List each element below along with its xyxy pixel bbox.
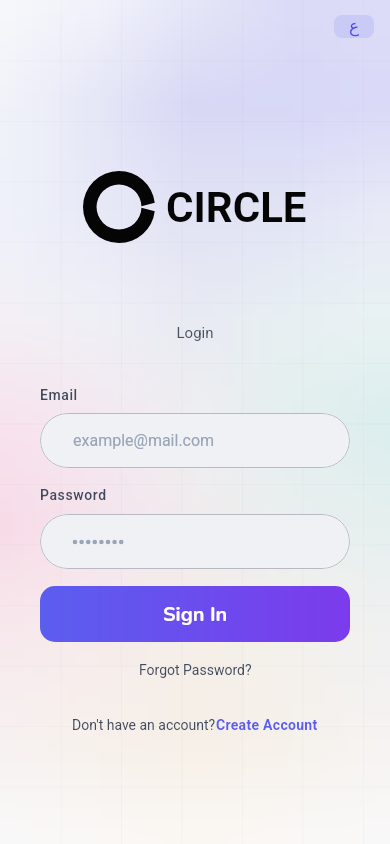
button[interactable]: Switch language to Arabic: [334, 15, 374, 38]
staticText: Sign In: [163, 601, 228, 628]
staticText: Create Account: [216, 717, 318, 733]
staticText: example@mail.com: [73, 431, 215, 450]
button[interactable]: Sign In: [40, 586, 350, 642]
staticText: ع: [349, 16, 360, 36]
staticText: Login: [0, 324, 390, 342]
staticText: Don't have an account?: [72, 717, 216, 733]
button[interactable]: Forgot Password?: [131, 659, 260, 681]
button[interactable]: Password field: [40, 514, 350, 569]
staticText: Forgot Password?: [139, 662, 252, 678]
staticText: CIRCLE: [166, 183, 307, 232]
button[interactable]: example@mail.com: [40, 413, 350, 468]
button[interactable]: Create Account: [216, 717, 318, 733]
staticText: Password: [40, 487, 107, 503]
staticText: Email: [40, 387, 78, 403]
